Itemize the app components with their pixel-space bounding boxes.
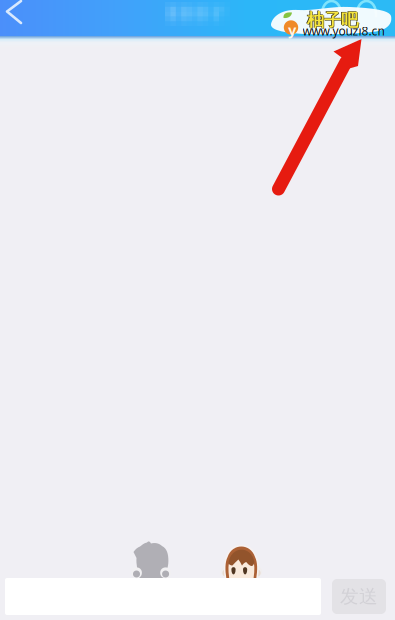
staticText: 柚子吧 (306, 9, 357, 30)
button[interactable]: Back (0, 0, 42, 36)
staticText: www.youzi8.cn (302, 23, 384, 39)
staticText: 柚子吧 (308, 10, 359, 31)
staticText: 柚子吧 (307, 9, 358, 31)
button[interactable]: 发送 (332, 579, 386, 614)
staticText: y (288, 20, 296, 39)
staticText: 发送 (340, 585, 378, 608)
